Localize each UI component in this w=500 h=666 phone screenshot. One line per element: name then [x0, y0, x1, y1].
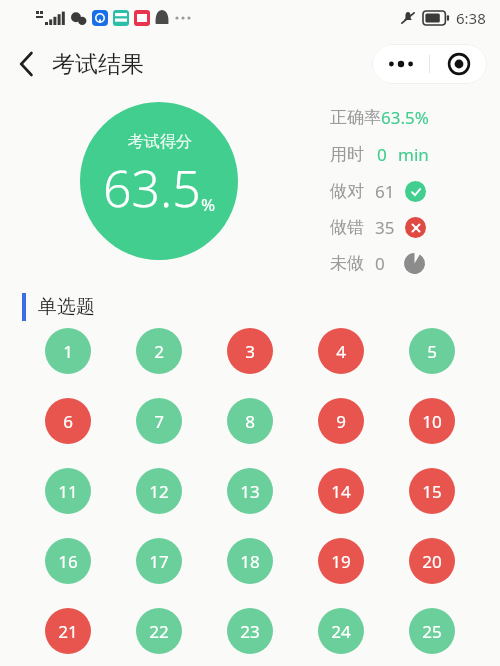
button[interactable]: 22 — [136, 608, 182, 654]
button[interactable]: 5 — [409, 328, 455, 374]
button[interactable]: 6 — [45, 398, 91, 444]
button[interactable]: 4 — [318, 328, 364, 374]
button[interactable]: 20 — [409, 538, 455, 584]
button[interactable]: 考试得分 — [80, 102, 238, 260]
staticText: 4 — [336, 340, 346, 363]
button[interactable]: Target — [430, 44, 487, 84]
staticText: 21 — [58, 620, 78, 643]
staticText: 18 — [240, 550, 260, 573]
staticText: 考试结果 — [52, 50, 144, 79]
button[interactable]: 14 — [318, 468, 364, 514]
staticText: 正确率 — [330, 107, 381, 128]
button[interactable]: 12 — [136, 468, 182, 514]
staticText: 15 — [422, 480, 442, 503]
staticText: 13 — [240, 480, 260, 503]
staticText: 1 — [63, 340, 73, 363]
staticText: 24 — [331, 620, 351, 643]
staticText: 0 — [377, 143, 387, 166]
staticText: 未做 — [330, 253, 364, 274]
staticText: 17 — [149, 550, 169, 573]
button[interactable]: 2 — [136, 328, 182, 374]
button[interactable]: 24 — [318, 608, 364, 654]
staticText: 10 — [422, 410, 442, 433]
staticText: 22 — [149, 620, 169, 643]
button[interactable]: 9 — [318, 398, 364, 444]
button[interactable]: 1 — [45, 328, 91, 374]
button[interactable]: 18 — [227, 538, 273, 584]
staticText: % — [201, 193, 216, 216]
button[interactable]: 19 — [318, 538, 364, 584]
button[interactable]: 13 — [227, 468, 273, 514]
button[interactable]: More options — [372, 44, 429, 84]
staticText: 0 — [375, 252, 385, 275]
staticText: 16 — [58, 550, 78, 573]
staticText: 考试得分 — [128, 132, 192, 152]
staticText: 用时 — [330, 144, 364, 165]
button[interactable]: 23 — [227, 608, 273, 654]
button[interactable]: 21 — [45, 608, 91, 654]
button[interactable]: 8 — [227, 398, 273, 444]
button[interactable]: 16 — [45, 538, 91, 584]
button[interactable]: 11 — [45, 468, 91, 514]
staticText: 11 — [58, 480, 78, 503]
staticText: 做对 — [330, 181, 364, 202]
staticText: min — [398, 143, 429, 166]
button[interactable]: 17 — [136, 538, 182, 584]
staticText: 3 — [245, 340, 255, 363]
staticText: 20 — [422, 550, 442, 573]
button[interactable]: Back — [10, 47, 44, 81]
button[interactable]: 15 — [409, 468, 455, 514]
staticText: 14 — [331, 480, 351, 503]
button[interactable]: 10 — [409, 398, 455, 444]
staticText: 23 — [240, 620, 260, 643]
button[interactable]: 25 — [409, 608, 455, 654]
staticText: 6:38 — [456, 8, 486, 28]
staticText: 63.5% — [381, 106, 429, 129]
staticText: 12 — [149, 480, 169, 503]
staticText: 单选题 — [38, 295, 95, 319]
staticText: 做错 — [330, 217, 364, 238]
staticText: 2 — [154, 340, 164, 363]
staticText: 35 — [375, 216, 395, 239]
staticText: 9 — [336, 410, 346, 433]
staticText: 61 — [375, 180, 395, 203]
button[interactable]: 7 — [136, 398, 182, 444]
staticText: 8 — [245, 410, 255, 433]
staticText: 7 — [154, 410, 164, 433]
staticText: 19 — [331, 550, 351, 573]
staticText: 6 — [63, 410, 73, 433]
staticText: 5 — [427, 340, 437, 363]
staticText: 25 — [422, 620, 442, 643]
staticText: 63.5 — [103, 154, 201, 222]
button[interactable]: 3 — [227, 328, 273, 374]
